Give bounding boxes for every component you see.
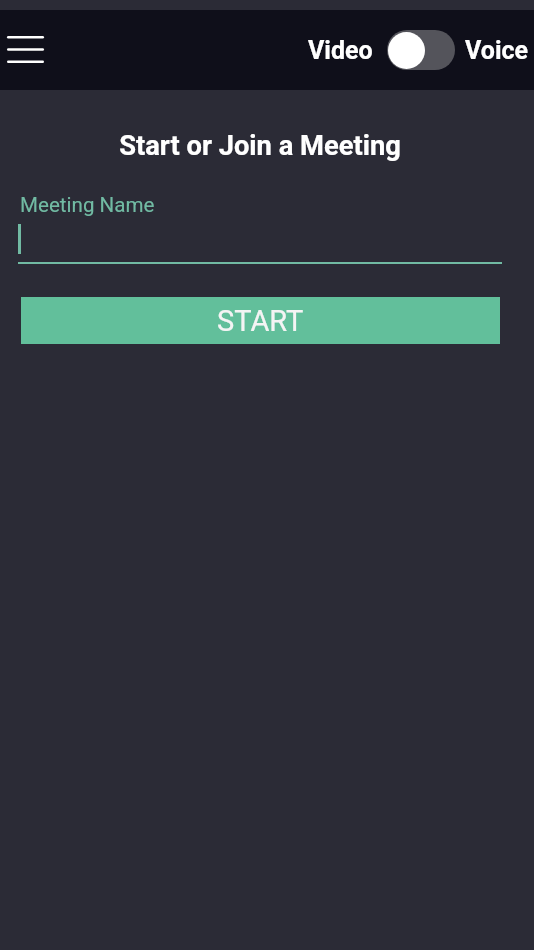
staticText: Start or Join a Meeting bbox=[18, 130, 502, 162]
button[interactable]: Switch between video and voice bbox=[387, 30, 455, 70]
button[interactable]: Open navigation menu bbox=[0, 24, 50, 74]
staticText: Voice bbox=[465, 36, 529, 65]
staticText: START bbox=[217, 304, 304, 338]
button[interactable]: Meeting Name input bbox=[18, 224, 502, 264]
button[interactable]: START bbox=[21, 297, 500, 344]
staticText: Meeting Name bbox=[20, 193, 155, 217]
staticText: Video bbox=[308, 36, 373, 65]
